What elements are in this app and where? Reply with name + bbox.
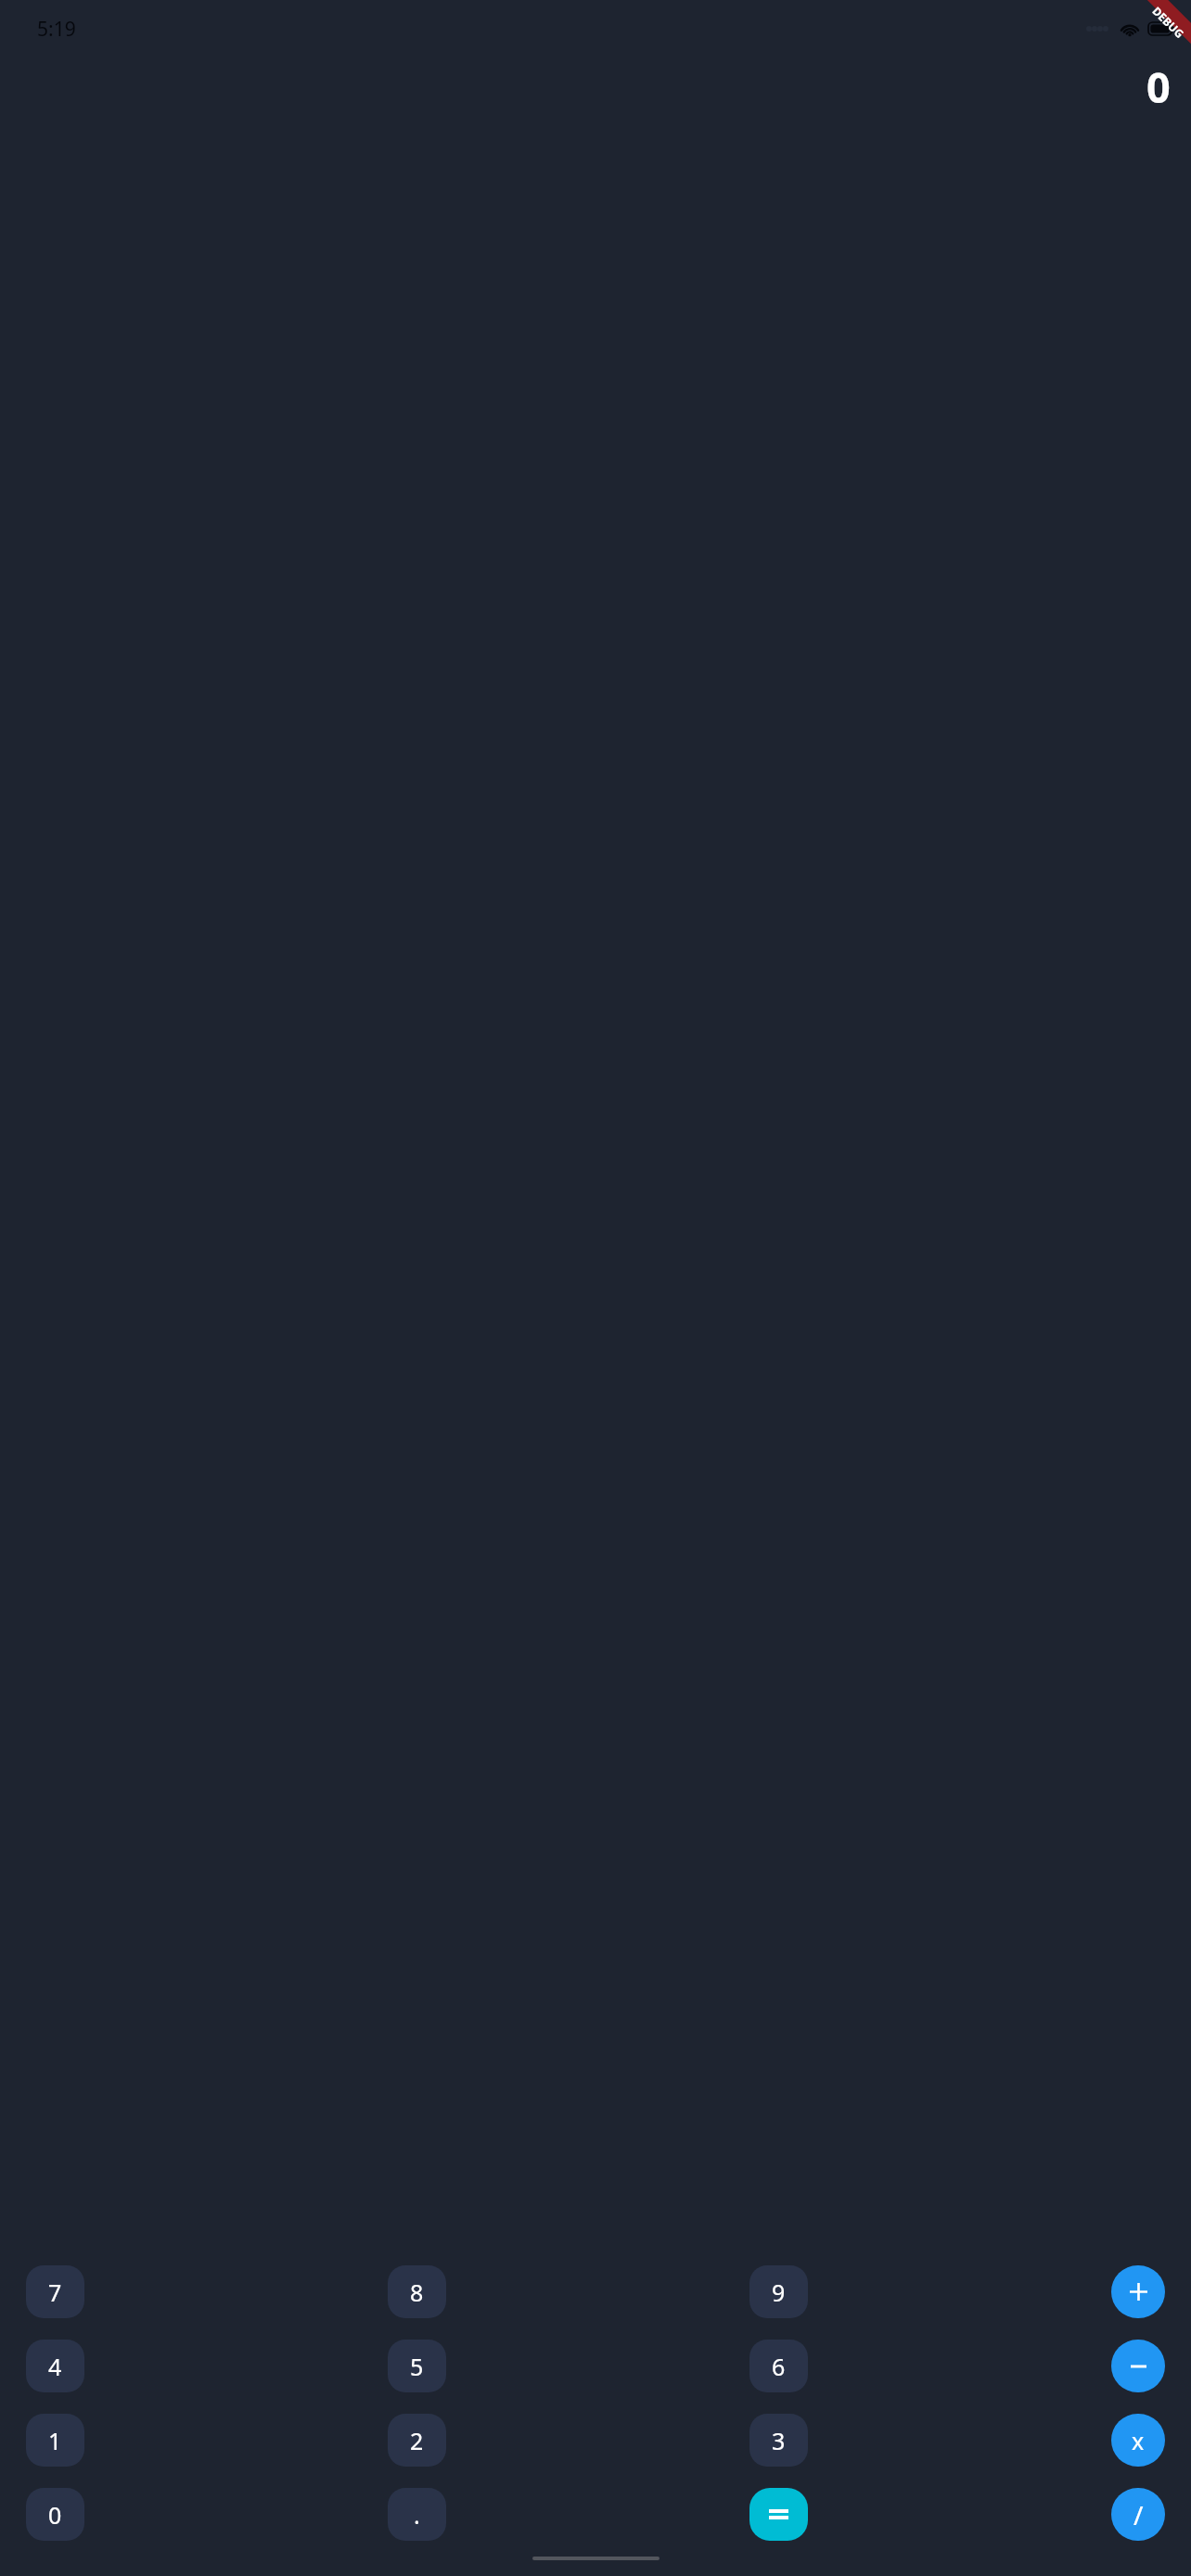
other: Equals [769,2508,788,2520]
staticText: 7 [48,2276,62,2308]
button[interactable]: Multiply [1111,2414,1165,2467]
button[interactable]: 1 [26,2414,84,2467]
staticText: . [414,2499,420,2531]
staticText: x [1132,2425,1145,2456]
staticText: 1 [48,2425,62,2456]
staticText: 9 [772,2276,786,2308]
staticText: 6 [772,2351,786,2382]
staticText: 0 [1146,58,1171,115]
button[interactable]: 4 [26,2340,84,2392]
button[interactable]: 6 [749,2340,808,2392]
button[interactable]: Plus [1111,2265,1165,2318]
button[interactable]: 0 [26,2488,84,2541]
staticText: 2 [410,2425,424,2456]
button[interactable]: 2 [388,2414,446,2467]
staticText: 3 [772,2425,786,2456]
staticText: / [1133,2497,1144,2532]
staticText: DEBUG [1150,3,1188,41]
staticText: 8 [410,2276,424,2308]
button[interactable]: 5 [388,2340,446,2392]
button[interactable]: Divide [1111,2488,1165,2541]
other: Minus [1131,2365,1146,2368]
button[interactable]: 7 [26,2265,84,2318]
button[interactable]: 8 [388,2265,446,2318]
staticText: 4 [48,2351,62,2382]
button[interactable]: Equals [749,2488,808,2541]
button[interactable]: Minus [1111,2340,1165,2392]
button[interactable]: 9 [749,2265,808,2318]
staticText: 5:19 [37,16,76,43]
staticText: 0 [48,2499,62,2531]
staticText: 5 [410,2351,424,2382]
button[interactable]: 3 [749,2414,808,2467]
other: Plus [1130,2283,1147,2301]
button[interactable]: . [388,2488,446,2541]
